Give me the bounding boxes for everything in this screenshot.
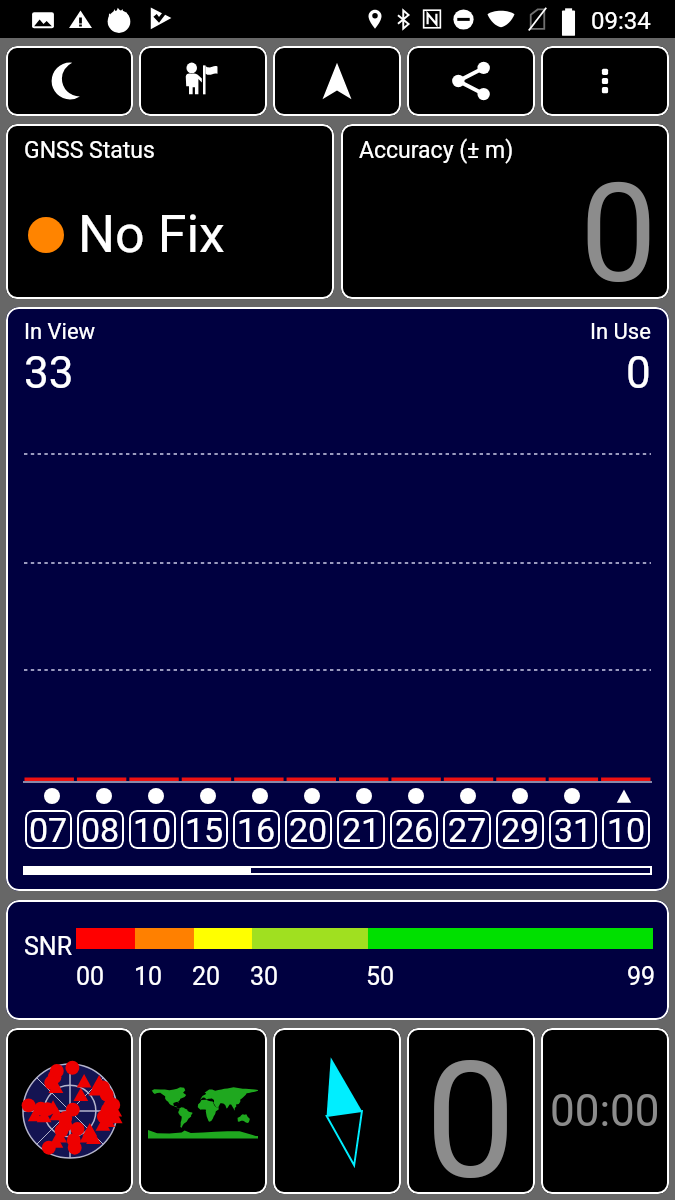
staticText: 27	[448, 810, 487, 849]
button[interactable]: Accuracy	[341, 124, 669, 299]
staticText: 00	[76, 962, 105, 991]
staticText: 10	[607, 810, 646, 849]
button[interactable]: Set location	[139, 46, 267, 116]
staticText: 31	[554, 810, 593, 849]
staticText: In Use	[590, 319, 651, 345]
button[interactable]: Satellites	[6, 307, 669, 891]
staticText: In View	[24, 319, 96, 345]
staticText: 09:34	[591, 7, 651, 35]
staticText: 30	[250, 962, 279, 991]
staticText: 10	[133, 810, 172, 849]
staticText: SNR	[24, 932, 73, 961]
staticText: 00:00	[550, 1085, 660, 1137]
staticText: 20	[289, 810, 328, 849]
staticText: Accuracy (± m)	[359, 137, 514, 164]
staticText: 20	[192, 962, 221, 991]
staticText: 29	[501, 810, 540, 849]
button[interactable]: Map	[139, 1028, 267, 1194]
button[interactable]: Speed	[407, 1028, 535, 1194]
staticText: 16	[237, 810, 276, 849]
button[interactable]: Time	[541, 1028, 669, 1194]
staticText: 15	[185, 810, 224, 849]
staticText: 0	[580, 154, 657, 299]
staticText: 10	[134, 962, 163, 991]
staticText: 21	[342, 810, 381, 849]
button[interactable]: GNSS Status	[6, 124, 334, 299]
button[interactable]: Night mode	[6, 46, 133, 116]
button[interactable]: SNR legend	[6, 900, 669, 1020]
staticText: 33	[24, 347, 74, 399]
staticText: 26	[395, 810, 434, 849]
button[interactable]: Sky plot	[6, 1028, 133, 1194]
staticText: 99	[627, 962, 656, 991]
staticText: 50	[366, 962, 395, 991]
button[interactable]: Compass	[273, 1028, 401, 1194]
staticText: No Fix	[78, 204, 225, 265]
button[interactable]: Navigate	[273, 46, 401, 116]
staticText: 0	[626, 347, 651, 399]
button[interactable]: More options	[541, 46, 669, 116]
button[interactable]: Share	[407, 46, 535, 116]
staticText: 08	[81, 810, 120, 849]
staticText: 0	[425, 1028, 517, 1192]
staticText: 07	[29, 810, 68, 849]
staticText: GNSS Status	[24, 137, 155, 164]
